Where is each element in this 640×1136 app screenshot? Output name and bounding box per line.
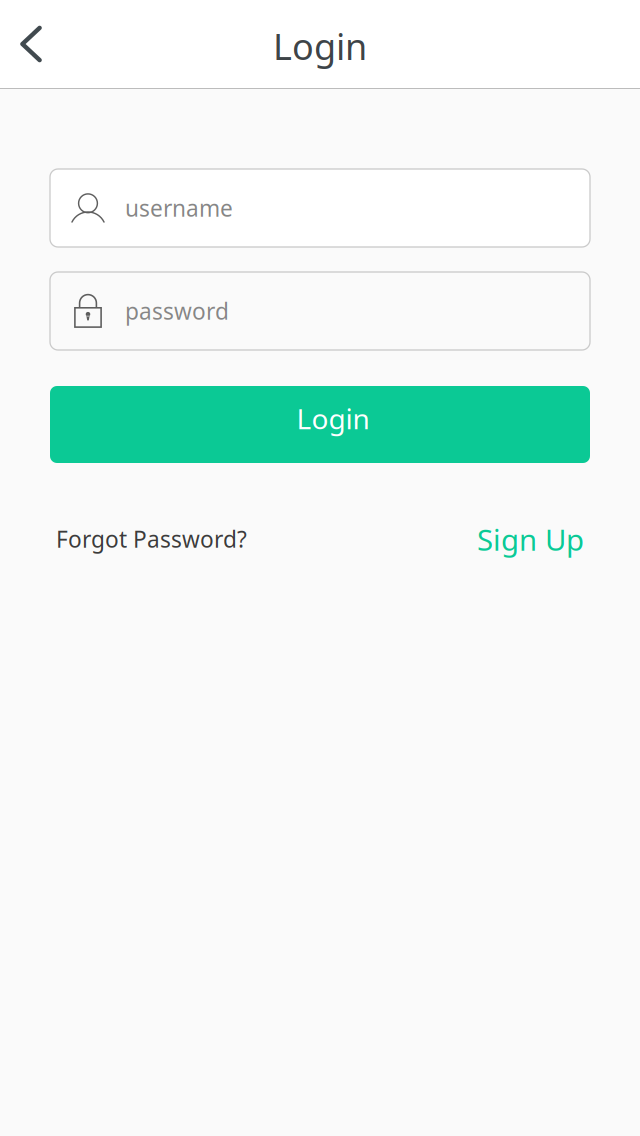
- staticText: Login: [273, 22, 367, 70]
- button[interactable]: password: [50, 272, 590, 350]
- button[interactable]: username: [50, 169, 590, 247]
- staticText: Login: [296, 400, 369, 437]
- button[interactable]: Sign Up: [477, 517, 584, 556]
- button[interactable]: Forgot Password?: [56, 524, 247, 554]
- staticText: username: [125, 193, 233, 223]
- button[interactable]: Login: [50, 386, 590, 463]
- staticText: password: [125, 296, 229, 326]
- staticText: Sign Up: [477, 520, 584, 559]
- button[interactable]: Back: [8, 0, 54, 88]
- staticText: Forgot Password?: [56, 524, 247, 554]
